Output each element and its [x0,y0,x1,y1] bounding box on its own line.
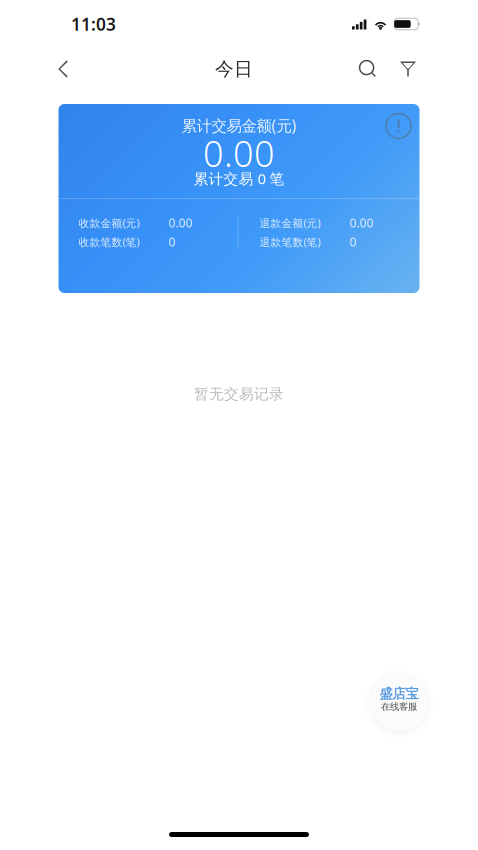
staticText: 收款金额(元) [78,216,139,230]
staticText: 退款笔数(笔) [259,235,320,249]
button[interactable]: 筛选 [390,48,426,90]
staticText: 退款金额(元) [259,216,320,230]
staticText: 11:03 [71,12,116,35]
staticText: 累计交易 0 笔 [193,169,284,188]
staticText: 累计交易金额(元) [181,115,296,136]
staticText: 收款笔数(笔) [78,235,139,249]
staticText: 0.00 [168,215,192,231]
button[interactable]: 说明 [385,113,411,139]
button[interactable]: 搜索 [350,48,386,90]
staticText: 0.00 [349,215,373,231]
staticText: 暂无交易记录 [194,385,284,403]
staticText: 0 [349,234,356,250]
staticText: 盛店宝 [379,686,418,702]
staticText: 今日 [215,57,253,80]
staticText: 0 [168,234,175,250]
button[interactable]: 返回 [43,48,83,90]
staticText: 在线客服 [381,701,417,712]
button[interactable]: 在线客服 [371,675,427,731]
staticText: 0.00 [203,129,275,177]
